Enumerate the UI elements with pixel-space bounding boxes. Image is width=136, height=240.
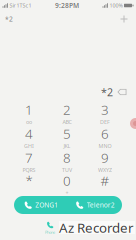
staticText: + [65, 189, 68, 196]
staticText: 5 [63, 125, 71, 142]
staticText: 9:28PM [55, 1, 79, 10]
staticText: 8 [63, 149, 71, 166]
staticText: ABC [62, 118, 71, 125]
button[interactable]: 6 [86, 125, 124, 149]
staticText: JKL [63, 142, 70, 149]
staticText: MNO [98, 142, 111, 149]
staticText: TUV [62, 166, 72, 173]
staticText: ZONG1 [35, 201, 58, 209]
staticText: Az Recorder [59, 219, 134, 236]
button[interactable]: Record [130, 118, 136, 129]
button[interactable]: 9 [86, 149, 124, 173]
staticText: *2 [5, 15, 13, 23]
staticText: 100% [109, 2, 122, 9]
staticText: Sir 1TSc1 [9, 2, 31, 9]
staticText: 0 [63, 172, 71, 189]
button[interactable]: 2 [48, 101, 86, 125]
button[interactable]: * [10, 172, 48, 196]
button[interactable]: 0 [48, 172, 86, 196]
button[interactable]: Add contact [117, 12, 131, 26]
staticText: PQRS [22, 166, 35, 173]
staticText: 1 [25, 101, 33, 118]
staticText: GHI [24, 142, 34, 149]
button[interactable]: Phone [39, 220, 61, 236]
button[interactable]: 1 [10, 101, 48, 125]
staticText: 3 [101, 101, 109, 118]
staticText: * [25, 172, 32, 189]
button[interactable]: 8 [48, 149, 86, 173]
button[interactable]: 5 [48, 125, 86, 149]
staticText: 9 [101, 149, 109, 166]
staticText: oo [26, 118, 32, 125]
button[interactable]: # [86, 172, 124, 196]
staticText: Phone [45, 230, 55, 235]
staticText: WXYZ [98, 166, 112, 173]
staticText: DEF [100, 118, 110, 125]
button[interactable]: Delete [113, 86, 131, 98]
staticText: 6 [101, 125, 109, 142]
staticText: *2 [101, 85, 113, 99]
staticText: 2 [63, 101, 71, 118]
button[interactable]: 4 [10, 125, 48, 149]
button[interactable]: ZONG1 [14, 196, 68, 214]
button[interactable]: Telenor2 [68, 196, 122, 214]
staticText: # [100, 172, 109, 189]
staticText: 4 [25, 125, 33, 142]
staticText: Telenor2 [87, 201, 115, 209]
button[interactable]: 7 [10, 149, 48, 173]
button[interactable]: 3 [86, 101, 124, 125]
staticText: 7 [25, 149, 33, 166]
